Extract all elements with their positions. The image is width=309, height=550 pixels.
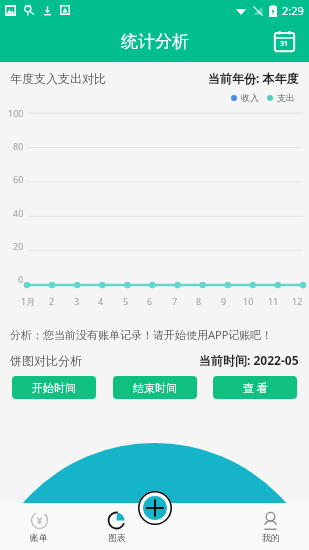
staticText: 60: [13, 173, 24, 185]
staticText: 8: [196, 295, 202, 307]
staticText: 9: [221, 295, 227, 307]
staticText: 当前时间: 2022-05: [199, 352, 299, 368]
button[interactable]: 开始时间: [12, 376, 96, 399]
staticText: 5: [123, 295, 129, 307]
staticText: 10: [243, 295, 254, 307]
button[interactable]: 账单: [0, 503, 78, 550]
staticText: 7: [172, 295, 178, 307]
staticText: 100: [8, 107, 24, 119]
staticText: 1月: [21, 295, 36, 307]
staticText: 40: [13, 207, 24, 219]
button[interactable]: Calendar: [267, 24, 301, 58]
staticText: 查 看: [243, 380, 268, 395]
staticText: 12: [292, 295, 303, 307]
staticText: 80: [13, 140, 24, 152]
staticText: 饼图对比分析: [10, 353, 82, 368]
staticText: 统计分析: [121, 31, 189, 52]
staticText: 3: [74, 295, 80, 307]
button[interactable]: 图表: [78, 503, 155, 550]
staticText: 31: [280, 39, 289, 49]
button[interactable]: Add: [138, 491, 172, 525]
staticText: 开始时间: [32, 381, 76, 395]
staticText: 结束时间: [133, 381, 177, 395]
staticText: 2: [49, 295, 55, 307]
staticText: 收入: [241, 92, 259, 103]
staticText: 2:29: [282, 3, 304, 18]
staticText: 分析：您当前没有账单记录！请开始使用APP记账吧！: [10, 327, 273, 342]
staticText: 0: [18, 273, 24, 285]
staticText: 支出: [277, 92, 295, 103]
staticText: 6: [147, 295, 153, 307]
button[interactable]: 结束时间: [113, 376, 197, 399]
staticText: 4: [98, 295, 104, 307]
staticText: 20: [13, 240, 24, 252]
staticText: 图表: [108, 532, 126, 543]
button[interactable]: 我的: [232, 503, 309, 550]
button[interactable]: 查 看: [213, 376, 297, 399]
staticText: 年度支入支出对比: [10, 71, 106, 86]
staticText: 账单: [30, 532, 48, 543]
staticText: 当前年份: 本年度: [208, 70, 299, 86]
staticText: 我的: [262, 532, 280, 543]
staticText: 11: [268, 295, 279, 307]
